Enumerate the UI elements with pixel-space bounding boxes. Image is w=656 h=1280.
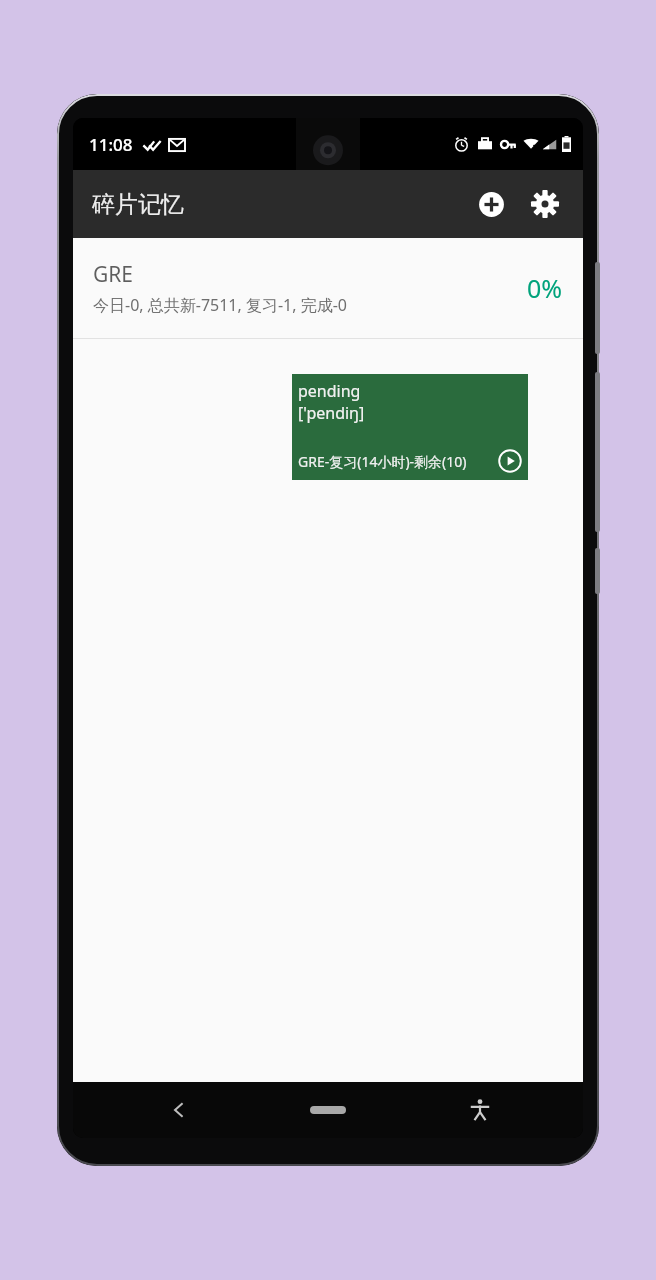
staticText: 碎片记忆 bbox=[92, 190, 184, 219]
button[interactable]: Accessibility bbox=[459, 1089, 501, 1131]
staticText: pending bbox=[298, 380, 361, 402]
button[interactable]: Home bbox=[293, 1089, 363, 1131]
button[interactable]: Play bbox=[497, 448, 523, 474]
staticText: ['pendiŋ] bbox=[298, 402, 365, 424]
button[interactable]: GRE bbox=[73, 238, 583, 338]
staticText: 今日-0, 总共新-7511, 复习-1, 完成-0 bbox=[93, 294, 348, 316]
button[interactable]: Add bbox=[467, 180, 515, 228]
staticText: 0% bbox=[527, 271, 563, 305]
staticText: GRE bbox=[93, 260, 134, 289]
button[interactable]: Settings bbox=[521, 180, 569, 228]
staticText: GRE-复习(14小时)-剩余(10) bbox=[298, 452, 467, 471]
button[interactable]: pending bbox=[292, 374, 528, 480]
button[interactable]: Back bbox=[158, 1089, 200, 1131]
staticText: 11:08 bbox=[89, 133, 133, 156]
